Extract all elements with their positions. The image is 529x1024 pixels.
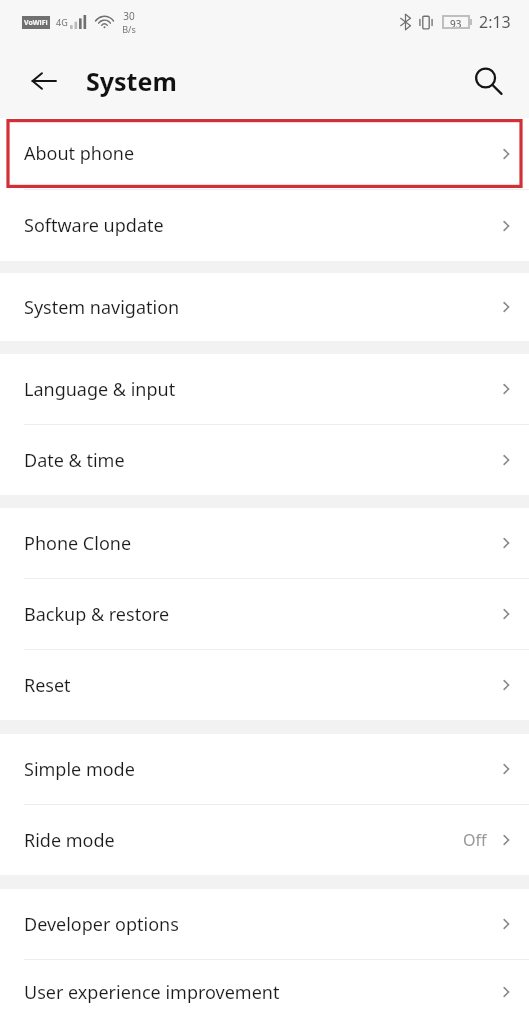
button[interactable]: Developer options <box>0 889 529 959</box>
staticText: Language & input <box>24 377 176 402</box>
staticText: Date & time <box>24 448 125 473</box>
staticText: Backup & restore <box>24 602 170 627</box>
staticText: System navigation <box>24 295 180 320</box>
staticText: 93 <box>450 17 462 27</box>
staticText: Software update <box>24 213 164 238</box>
button[interactable]: Reset <box>0 650 529 720</box>
staticText: 30 <box>123 9 135 23</box>
staticText: Off <box>463 829 487 851</box>
staticText: B/s <box>122 23 136 35</box>
staticText: User experience improvement <box>24 980 280 1005</box>
button[interactable]: Software update <box>0 190 529 261</box>
staticText: Phone Clone <box>24 531 132 556</box>
button[interactable]: Phone Clone <box>0 508 529 578</box>
staticText: Reset <box>24 673 71 698</box>
button[interactable]: Simple mode <box>0 734 529 804</box>
button[interactable]: Language & input <box>0 354 529 424</box>
button[interactable]: Search <box>465 58 511 104</box>
staticText: System <box>86 64 177 98</box>
staticText: About phone <box>24 141 135 166</box>
button[interactable]: Ride mode <box>0 805 529 875</box>
button[interactable]: System navigation <box>0 273 529 341</box>
button[interactable]: User experience improvement <box>0 960 529 1024</box>
staticText: Ride mode <box>24 828 115 853</box>
staticText: 4G <box>56 16 68 28</box>
button[interactable]: About phone <box>0 118 529 189</box>
staticText: 2:13 <box>479 11 511 33</box>
button[interactable]: Back <box>22 59 66 103</box>
button[interactable]: Backup & restore <box>0 579 529 649</box>
staticText: Simple mode <box>24 757 135 782</box>
button[interactable]: Date & time <box>0 425 529 495</box>
staticText: VoWiFi <box>24 18 48 28</box>
staticText: Developer options <box>24 912 179 937</box>
